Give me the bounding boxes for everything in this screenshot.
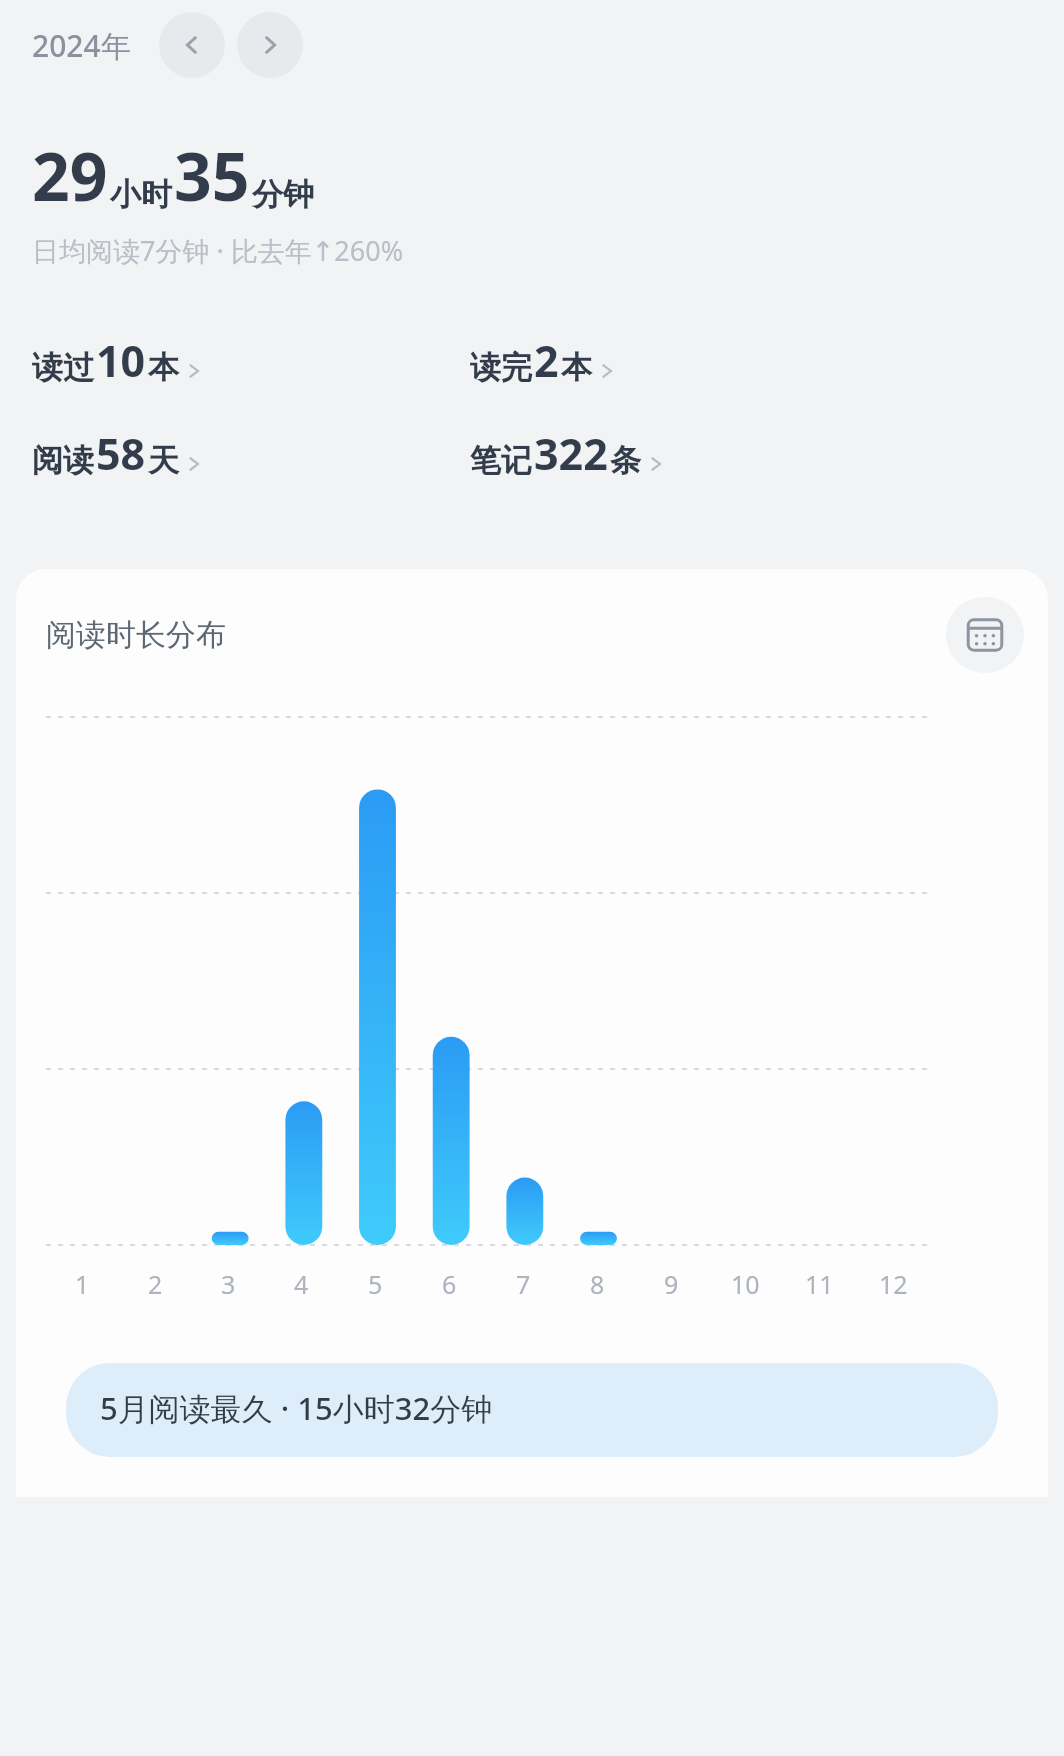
staticText: 本	[561, 348, 592, 387]
staticText: 35	[174, 130, 250, 220]
staticText: 2024年	[32, 25, 131, 66]
staticText: 10	[731, 1267, 760, 1301]
button[interactable]: 读过	[32, 331, 217, 390]
staticText: 天	[148, 441, 179, 480]
button[interactable]: 阅读	[32, 424, 217, 483]
staticText: 29	[32, 130, 108, 220]
staticText: 笔记	[470, 441, 532, 480]
staticText: 小时	[110, 175, 172, 214]
staticText: 读过	[32, 348, 94, 387]
staticText: 5月阅读最久 · 15小时32分钟	[100, 1387, 493, 1429]
button[interactable]: 笔记	[470, 424, 679, 483]
staticText: 58	[96, 424, 146, 483]
staticText: 2	[534, 331, 559, 390]
staticText: 12	[879, 1267, 908, 1301]
button[interactable]: Previous year	[159, 12, 225, 78]
staticText: 2	[148, 1267, 163, 1301]
button[interactable]: 读完	[470, 331, 630, 390]
staticText: 10	[96, 331, 146, 390]
staticText: 8	[590, 1267, 605, 1301]
staticText: 阅读时长分布	[46, 616, 226, 654]
staticText: 9	[664, 1267, 679, 1301]
staticText: 11	[805, 1267, 834, 1301]
staticText: 6	[442, 1267, 457, 1301]
staticText: 4	[294, 1267, 309, 1301]
staticText: 分钟	[252, 175, 314, 214]
staticText: 5	[368, 1267, 383, 1301]
staticText: 1	[75, 1267, 90, 1301]
button[interactable]: Next year	[237, 12, 303, 78]
staticText: 读完	[470, 348, 532, 387]
staticText: 322	[534, 424, 608, 483]
staticText: 日均阅读7分钟 · 比去年↑260%	[32, 232, 404, 269]
staticText: 3	[221, 1267, 236, 1301]
button[interactable]: Select month	[946, 597, 1024, 673]
staticText: 阅读	[32, 441, 94, 480]
staticText: 7	[516, 1267, 531, 1301]
staticText: 条	[610, 441, 641, 480]
button[interactable]: 5月阅读最久 · 15小时32分钟	[66, 1363, 998, 1457]
staticText: 本	[148, 348, 179, 387]
